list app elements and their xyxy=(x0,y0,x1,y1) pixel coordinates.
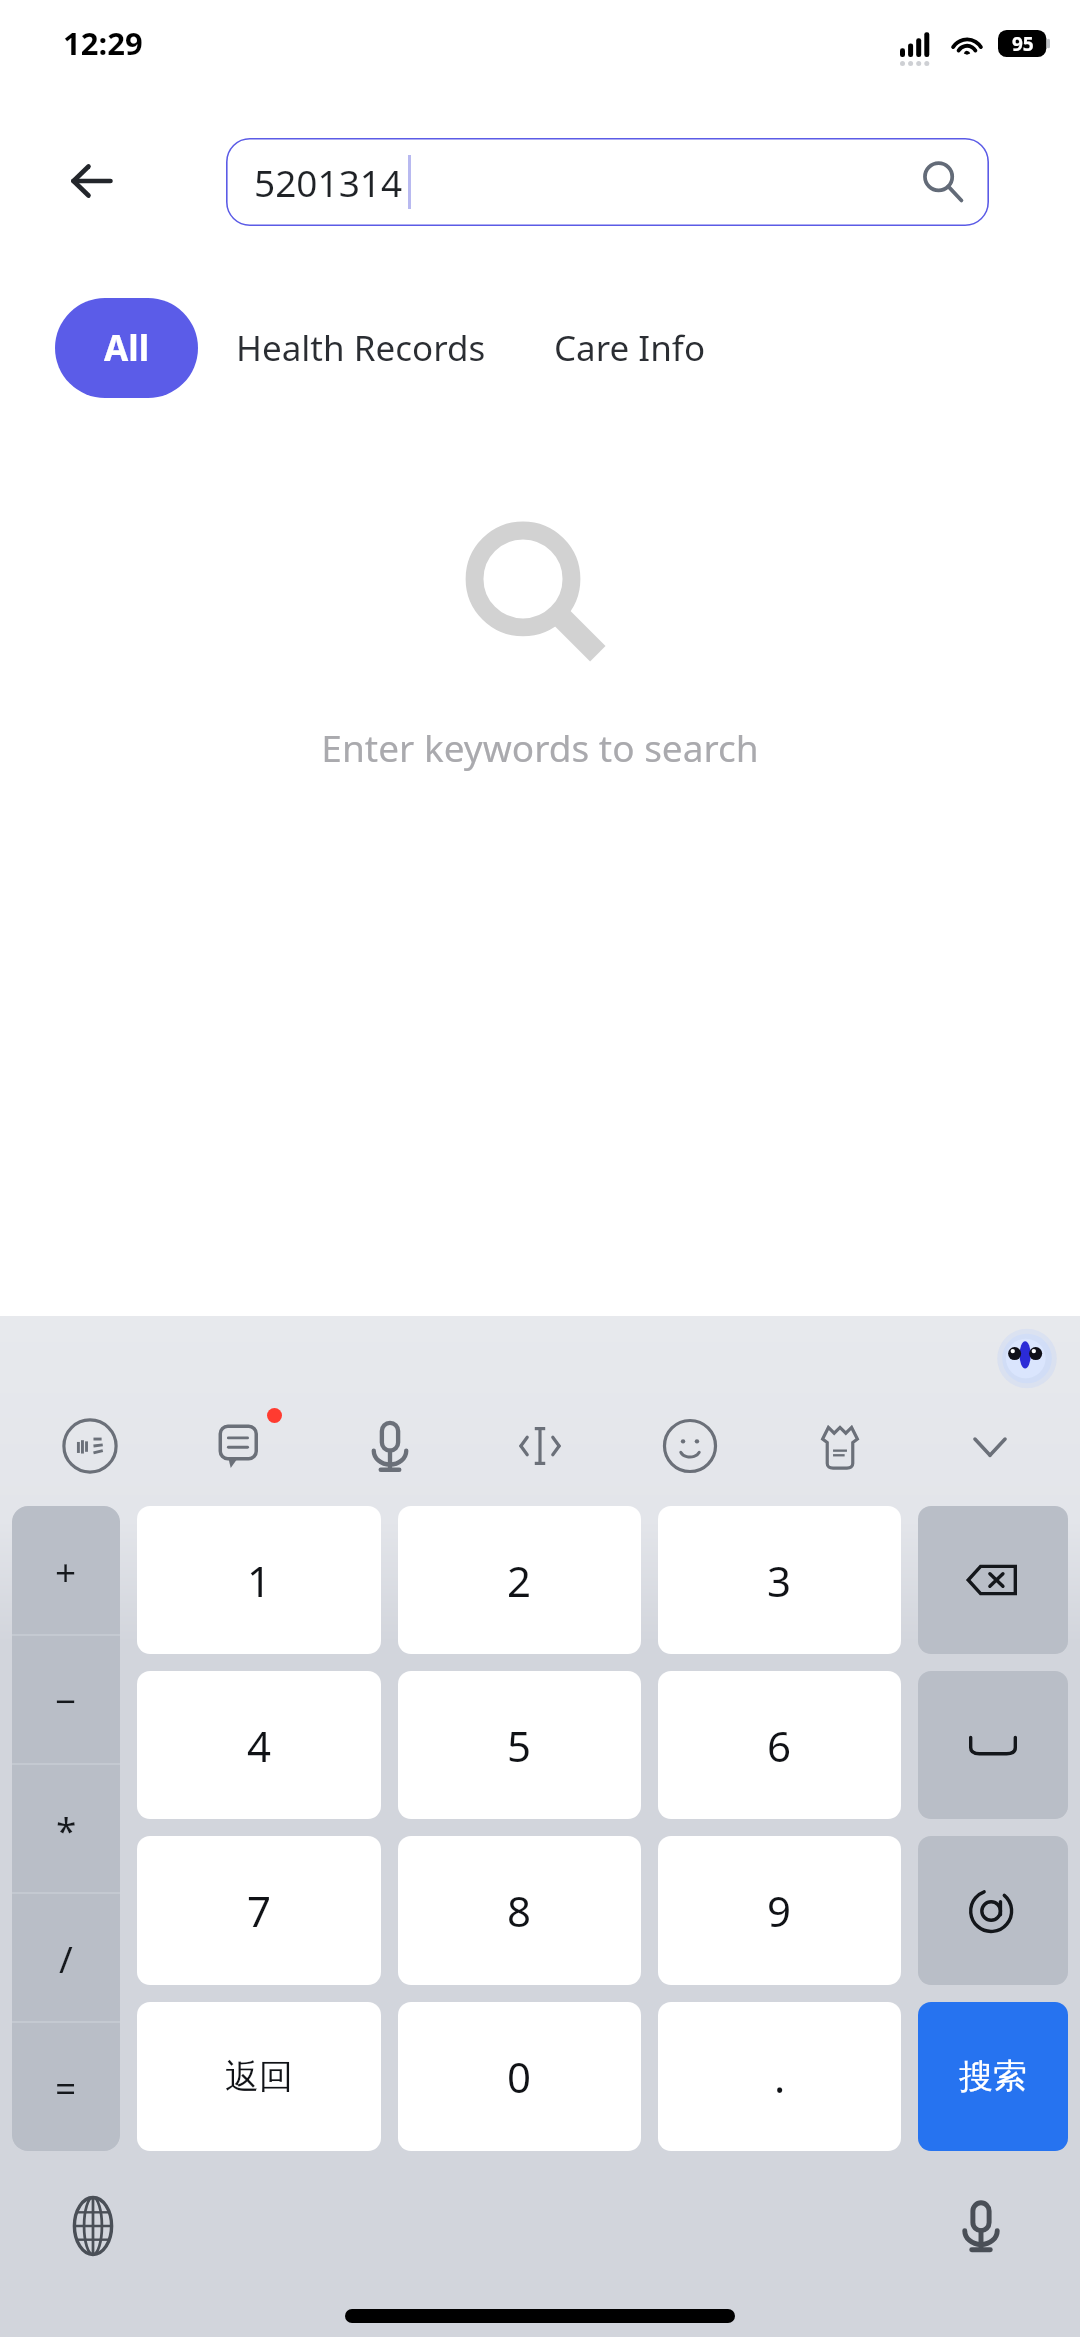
staticText: 5201314 xyxy=(254,157,403,207)
other: Search xyxy=(921,160,965,204)
button[interactable]: Hide keyboard xyxy=(946,1402,1034,1490)
button[interactable]: 5201314 xyxy=(226,138,989,226)
staticText: = xyxy=(55,2062,77,2112)
button[interactable]: 返回 xyxy=(137,2002,381,2151)
staticText: / xyxy=(59,1933,73,1983)
button[interactable]: . xyxy=(658,2002,901,2151)
button[interactable]: Change language xyxy=(50,2183,136,2269)
staticText: 返回 xyxy=(225,2055,293,2098)
button[interactable]: 1 xyxy=(137,1506,381,1654)
staticText: . xyxy=(774,2048,786,2105)
button[interactable]: Voice input xyxy=(346,1402,434,1490)
button[interactable]: Care Info xyxy=(538,304,722,392)
button[interactable]: Space xyxy=(918,1671,1068,1819)
staticText: 7 xyxy=(247,1882,272,1939)
button[interactable]: 搜索 xyxy=(918,2002,1068,2151)
button[interactable]: / xyxy=(12,1893,120,2022)
staticText: 12:29 xyxy=(63,22,143,64)
staticText: 5 xyxy=(507,1717,532,1774)
button[interactable]: At sign xyxy=(918,1836,1068,1985)
button[interactable]: Delete xyxy=(918,1506,1068,1654)
button[interactable]: 3 xyxy=(658,1506,901,1654)
button[interactable]: Voice input xyxy=(938,2183,1024,2269)
button[interactable]: 7 xyxy=(137,1836,381,1985)
button[interactable]: + xyxy=(12,1506,120,1635)
button[interactable]: Skins xyxy=(796,1402,884,1490)
staticText: 2 xyxy=(507,1552,532,1609)
staticText: * xyxy=(56,1804,77,1854)
button[interactable]: 5 xyxy=(398,1671,641,1819)
button[interactable]: * xyxy=(12,1764,120,1893)
button[interactable]: 0 xyxy=(398,2002,641,2151)
staticText: 6 xyxy=(767,1717,792,1774)
staticText: Care Info xyxy=(554,324,706,372)
button[interactable]: Emoji xyxy=(646,1402,734,1490)
staticText: Health Records xyxy=(236,324,486,372)
button[interactable]: Back xyxy=(60,149,124,213)
button[interactable]: 2 xyxy=(398,1506,641,1654)
staticText: − xyxy=(55,1675,77,1725)
button[interactable]: Health Records xyxy=(220,304,502,392)
staticText: 9 xyxy=(767,1882,792,1939)
button[interactable]: Cursor xyxy=(496,1402,584,1490)
staticText: 搜索 xyxy=(959,2055,1027,2098)
staticText: 8 xyxy=(507,1882,532,1939)
button[interactable]: = xyxy=(12,2022,120,2151)
button[interactable]: Input method xyxy=(46,1402,134,1490)
staticText: 0 xyxy=(507,2048,532,2105)
button[interactable]: All xyxy=(55,298,198,398)
staticText: All xyxy=(104,324,150,372)
button[interactable]: Phrases xyxy=(196,1402,284,1490)
button[interactable]: 8 xyxy=(398,1836,641,1985)
button[interactable]: 4 xyxy=(137,1671,381,1819)
staticText: Enter keywords to search xyxy=(321,722,759,772)
button[interactable]: 6 xyxy=(658,1671,901,1819)
button[interactable]: 9 xyxy=(658,1836,901,1985)
staticText: 4 xyxy=(247,1717,272,1774)
staticText: 1 xyxy=(247,1552,272,1609)
staticText: 95 xyxy=(1012,31,1034,57)
staticText: + xyxy=(55,1546,77,1596)
staticText: 3 xyxy=(767,1552,792,1609)
button[interactable]: − xyxy=(12,1635,120,1764)
